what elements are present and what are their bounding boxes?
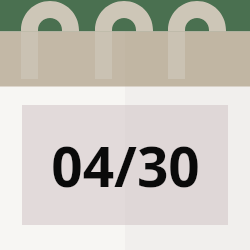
button[interactable]: Calendar, date 04/30: [0, 0, 250, 250]
staticText: 04/30: [51, 128, 200, 203]
